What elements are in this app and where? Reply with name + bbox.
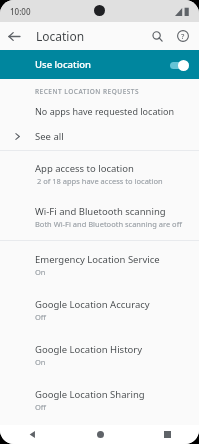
button[interactable]: Google Location Accuracy: [0, 291, 199, 329]
staticText: Google Location Accuracy: [35, 298, 150, 311]
staticText: Both Wi-Fi and Bluetooth scanning are of…: [35, 219, 182, 229]
staticText: On: [35, 357, 46, 367]
staticText: Wi-Fi and Bluetooth scanning: [35, 205, 166, 218]
button[interactable]: Emergency Location Service: [0, 246, 199, 284]
button[interactable]: Help: [170, 23, 196, 49]
button[interactable]: App access to location: [0, 155, 199, 193]
button[interactable]: Back: [22, 425, 42, 444]
button[interactable]: Use location: [0, 50, 199, 79]
staticText: RECENT LOCATION REQUESTS: [35, 87, 140, 96]
staticText: Emergency Location Service: [35, 253, 160, 266]
staticText: ?: [181, 31, 185, 41]
staticText: Location: [36, 28, 85, 44]
button[interactable]: Recent apps: [157, 425, 177, 444]
staticText: App access to location: [35, 162, 134, 175]
button[interactable]: Home: [90, 425, 110, 444]
staticText: Use location: [35, 58, 91, 71]
staticText: 2 of 18 apps have access to location: [35, 176, 163, 186]
staticText: 10:00: [10, 6, 31, 17]
staticText: Off: [35, 402, 47, 412]
button[interactable]: Google Location History: [0, 336, 199, 374]
button[interactable]: Search: [144, 23, 170, 49]
staticText: See all: [35, 130, 64, 143]
staticText: Google Location Sharing: [35, 388, 145, 401]
button[interactable]: See all: [0, 126, 199, 150]
button[interactable]: Google Location Sharing: [0, 381, 199, 419]
button[interactable]: Back: [0, 22, 28, 50]
staticText: On: [35, 267, 46, 277]
staticText: Off: [35, 312, 47, 322]
staticText: Google Location History: [35, 343, 143, 356]
button[interactable]: Wi-Fi and Bluetooth scanning: [0, 198, 199, 236]
staticText: No apps have requested location recently: [35, 105, 199, 117]
